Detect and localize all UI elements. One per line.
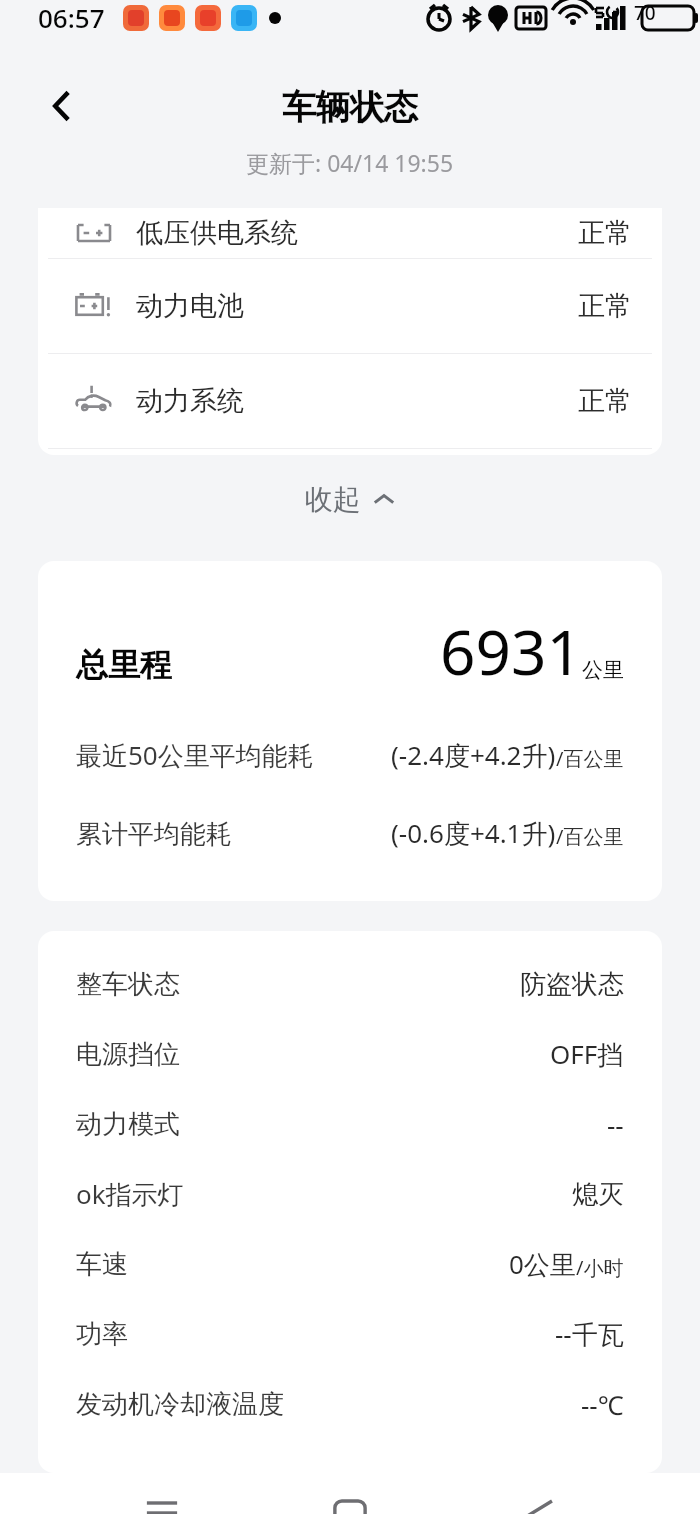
button[interactable]: 电源挡位 [76, 1019, 624, 1089]
staticText: 收起 [305, 482, 361, 517]
staticText: (-0.6度+4.1升) [391, 815, 556, 851]
button[interactable]: 收起 [271, 468, 429, 531]
staticText: 电源挡位 [76, 1038, 180, 1071]
staticText: /百公里 [556, 823, 624, 850]
staticText: 动力系统 [136, 384, 244, 418]
staticText: 整车状态 [76, 968, 180, 1001]
staticText: 0公里 [509, 1246, 576, 1282]
button[interactable]: 发动机冷却液温度 [76, 1369, 624, 1439]
button[interactable]: 动力系统 [38, 354, 662, 448]
staticText: 70 [634, 0, 656, 26]
staticText: /小时 [576, 1254, 624, 1281]
staticText: 功率 [76, 1318, 128, 1351]
button[interactable]: Home [323, 1499, 377, 1514]
staticText: 熄灭 [572, 1178, 624, 1211]
staticText: 6931 [440, 609, 582, 693]
staticText: 最近50公里平均能耗 [76, 737, 314, 773]
staticText: 动力电池 [136, 289, 244, 323]
staticText: --℃ [581, 1387, 624, 1422]
button[interactable]: 车速 [76, 1229, 624, 1299]
staticText: ok指示灯 [76, 1176, 184, 1212]
staticText: 低压供电系统 [136, 216, 298, 250]
staticText: 正常 [578, 216, 632, 250]
staticText: 正常 [578, 289, 632, 323]
button[interactable]: 动力模式 [76, 1089, 624, 1159]
staticText: 车辆状态 [282, 86, 418, 129]
button[interactable]: 低压供电系统 [38, 208, 662, 258]
button[interactable]: Recent apps [135, 1499, 189, 1514]
button[interactable]: 最近50公里平均能耗 [76, 737, 624, 773]
button[interactable]: 功率 [76, 1299, 624, 1369]
button[interactable]: 动力电池 [38, 259, 662, 353]
staticText: 防盗状态 [520, 968, 624, 1001]
staticText: 06:57 [38, 0, 105, 35]
staticText: 动力模式 [76, 1108, 180, 1141]
button[interactable]: 整车状态 [76, 949, 624, 1019]
staticText: --千瓦 [555, 1316, 624, 1352]
staticText: (-2.4度+4.2升) [391, 737, 556, 773]
staticText: 总里程 [76, 645, 172, 685]
staticText: 更新于: 04/14 19:55 [246, 147, 454, 178]
staticText: 正常 [578, 384, 632, 418]
staticText: 车速 [76, 1248, 128, 1281]
staticText: -- [607, 1107, 624, 1142]
staticText: 发动机冷却液温度 [76, 1388, 284, 1421]
staticText: OFF挡 [550, 1036, 624, 1072]
button[interactable]: 累计平均能耗 [76, 815, 624, 851]
staticText: 公里 [582, 657, 624, 683]
button[interactable]: Back [512, 1499, 566, 1514]
staticText: /百公里 [556, 745, 624, 772]
button[interactable]: Back [34, 78, 90, 134]
button[interactable]: ok指示灯 [76, 1159, 624, 1229]
staticText: 累计平均能耗 [76, 818, 232, 851]
